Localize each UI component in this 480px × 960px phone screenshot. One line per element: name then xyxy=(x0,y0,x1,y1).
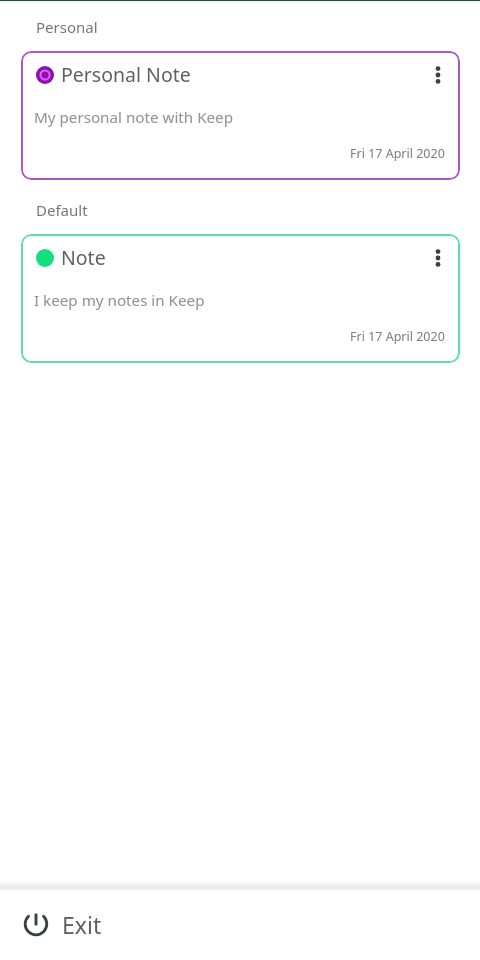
staticText: Personal Note xyxy=(61,61,191,88)
button[interactable]: More options xyxy=(418,238,458,278)
button[interactable]: More options xyxy=(418,55,458,95)
staticText: Note xyxy=(61,244,106,271)
button[interactable]: Exit xyxy=(0,893,480,960)
staticText: Default xyxy=(36,200,88,220)
staticText: Exit xyxy=(62,909,102,940)
staticText: Fri 17 April 2020 xyxy=(350,328,445,345)
staticText: Fri 17 April 2020 xyxy=(350,145,445,162)
button[interactable]: Note xyxy=(21,234,460,363)
staticText: I keep my notes in Keep xyxy=(34,290,205,311)
staticText: Personal xyxy=(36,17,98,37)
staticText: My personal note with Keep xyxy=(34,107,234,128)
button[interactable]: Personal Note xyxy=(21,51,460,180)
